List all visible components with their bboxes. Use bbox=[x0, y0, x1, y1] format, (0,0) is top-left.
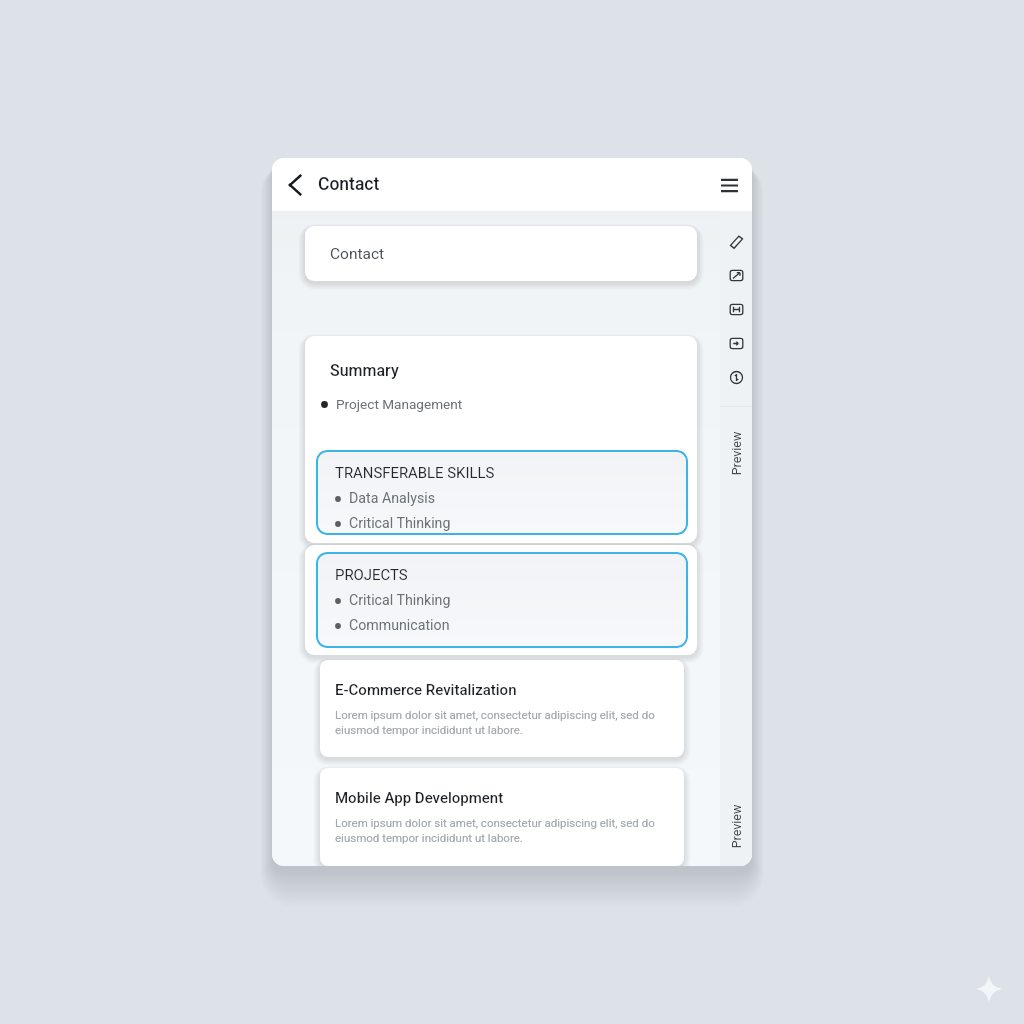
staticText: Data Analysis bbox=[349, 490, 435, 507]
staticText: Contact bbox=[330, 245, 385, 263]
button[interactable]: Menu bbox=[714, 170, 744, 200]
button[interactable]: Insert image bbox=[720, 258, 752, 292]
staticText: Communication bbox=[349, 617, 450, 634]
staticText: TRANSFERABLE SKILLS bbox=[335, 464, 495, 481]
button[interactable]: PROJECTS bbox=[316, 552, 688, 648]
staticText: PROJECTS bbox=[335, 566, 408, 583]
staticText: E-Commerce Revitalization bbox=[335, 681, 517, 699]
button[interactable]: Contact field bbox=[305, 226, 697, 281]
staticText: Contact bbox=[318, 174, 380, 195]
staticText: Preview bbox=[728, 791, 743, 861]
staticText: Lorem ipsum dolor sit amet, consectetur … bbox=[335, 816, 674, 845]
button[interactable]: Back bbox=[280, 170, 310, 200]
button[interactable]: E-Commerce Revitalization bbox=[320, 660, 684, 757]
staticText: Preview bbox=[728, 418, 743, 488]
button[interactable]: Mobile App Development bbox=[320, 768, 684, 866]
button[interactable]: Preview bbox=[720, 430, 752, 476]
staticText: Critical Thinking bbox=[349, 515, 451, 532]
button[interactable]: Info bbox=[720, 360, 752, 394]
staticText: Mobile App Development bbox=[335, 789, 504, 807]
staticText: Summary bbox=[330, 361, 399, 380]
staticText: Project Management bbox=[336, 396, 463, 412]
button[interactable]: Insert layout bbox=[720, 292, 752, 326]
button[interactable]: Preview bbox=[720, 803, 752, 849]
button[interactable]: Edit bbox=[720, 224, 752, 258]
button[interactable]: Insert media bbox=[720, 326, 752, 360]
staticText: Lorem ipsum dolor sit amet, consectetur … bbox=[335, 708, 674, 737]
button[interactable]: TRANSFERABLE SKILLS bbox=[316, 450, 688, 535]
staticText: Critical Thinking bbox=[349, 592, 451, 609]
